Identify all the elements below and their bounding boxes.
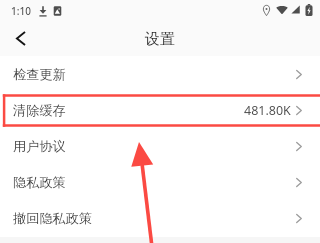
staticText: 设置 [145,30,175,49]
staticText: 检查更新 [13,66,66,83]
button[interactable]: 清除缓存 [0,92,320,128]
staticText: 用户协议 [13,138,66,155]
staticText: 481.80K [244,102,291,119]
staticText: 隐私政策 [13,174,66,191]
button[interactable]: 返回 [0,22,40,56]
staticText: 1:10 [11,4,31,18]
button[interactable]: 用户协议 [0,128,320,164]
button[interactable]: 隐私政策 [0,164,320,200]
button[interactable]: 撤回隐私政策 [0,200,320,236]
button[interactable]: 检查更新 [0,56,320,92]
staticText: 撤回隐私政策 [13,210,93,227]
staticText: 清除缓存 [13,102,66,119]
